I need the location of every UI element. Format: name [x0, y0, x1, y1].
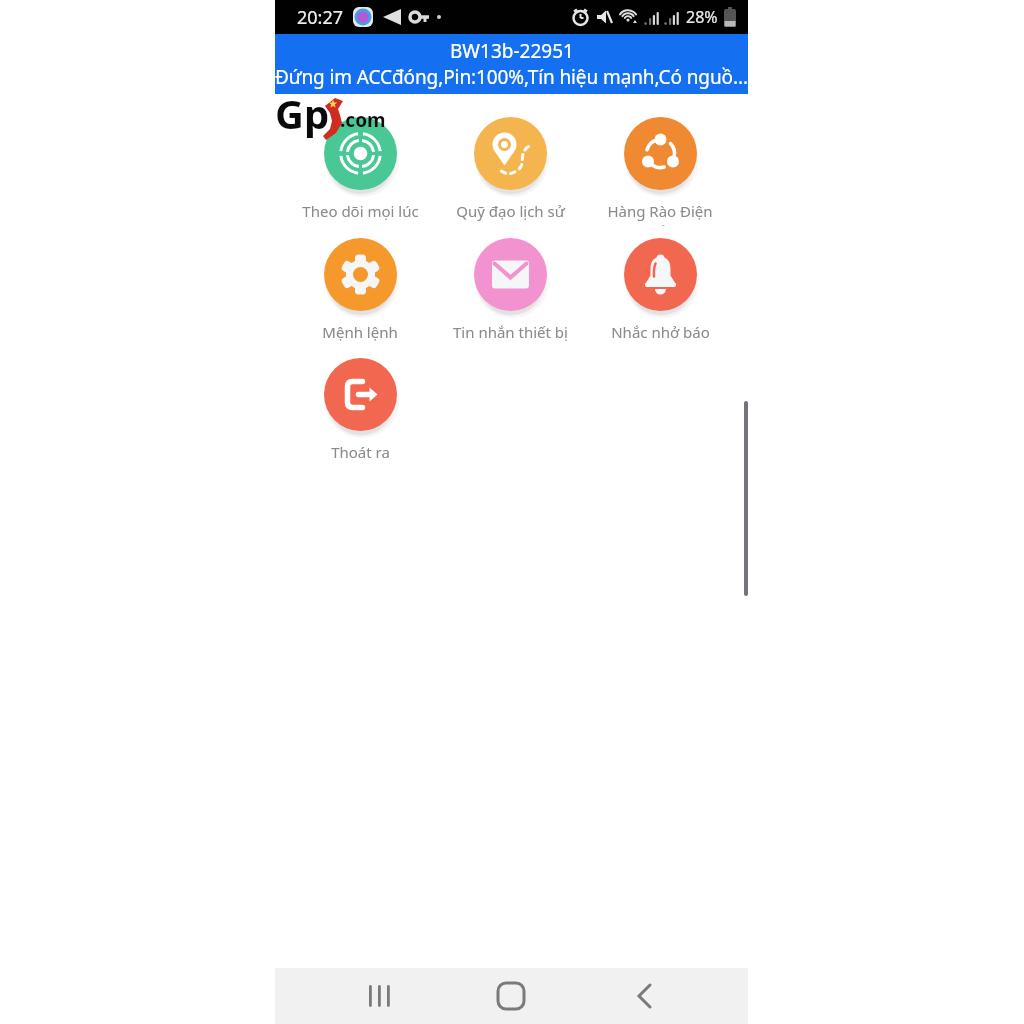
- button[interactable]: Hàng Rào Điện: [585, 116, 735, 226]
- staticText: Tử: [651, 221, 669, 226]
- button[interactable]: Thoát ra: [285, 357, 435, 462]
- staticText: Nhắc nhở báo: [611, 322, 710, 342]
- button[interactable]: [360, 976, 400, 1016]
- button[interactable]: [624, 976, 664, 1016]
- staticText: Gp: [275, 86, 330, 138]
- staticText: 28%: [686, 6, 718, 28]
- staticText: Quỹ đạo lịch sử: [456, 201, 565, 221]
- staticText: Mệnh lệnh: [322, 322, 398, 342]
- button[interactable]: Theo dõi mọi lúc: [285, 116, 435, 221]
- staticText: BW13b-22951: [450, 38, 574, 64]
- button[interactable]: Nhắc nhở báo: [585, 237, 735, 347]
- button[interactable]: Mệnh lệnh: [285, 237, 435, 342]
- staticText: Thoát ra: [331, 442, 390, 462]
- staticText: Hàng Rào Điện: [607, 201, 713, 221]
- staticText: .com: [340, 107, 386, 133]
- button[interactable]: Quỹ đạo lịch sử: [435, 116, 585, 221]
- staticText: 20:27: [297, 5, 344, 30]
- button[interactable]: [491, 976, 531, 1016]
- button[interactable]: Tin nhắn thiết bị: [435, 237, 585, 342]
- staticText: Theo dõi mọi lúc: [302, 201, 419, 221]
- staticText: Tin nhắn thiết bị: [453, 322, 568, 342]
- staticText: Đứng im ACCđóng,Pin:100%,Tín hiệu mạnh,C…: [275, 64, 748, 90]
